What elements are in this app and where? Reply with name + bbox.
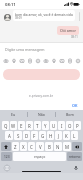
staticText: R [28,123,31,129]
button[interactable]: C [28,142,35,151]
button[interactable]: Dictate [73,165,79,171]
button[interactable]: Gif [66,57,73,64]
staticText: 123 [4,155,10,159]
staticText: S [17,133,20,139]
button[interactable]: S [14,131,22,140]
button[interactable]: Shift [1,142,11,151]
staticText: Digite uma mensagem [5,47,45,52]
staticText: K [65,133,68,139]
staticText: Não [38,112,45,117]
staticText: I [61,123,63,129]
button[interactable]: 123 [1,152,12,161]
button[interactable]: Oiii amor [57,26,79,35]
button[interactable]: G [39,131,46,140]
staticText: Bom [66,112,74,117]
button[interactable]: Eu [0,110,27,119]
staticText: T [36,123,39,129]
button[interactable]: Sticker [58,57,65,64]
button[interactable]: Hold to record voice message [3,69,80,80]
staticText: 08:09 [15,16,22,20]
staticText: F [33,133,36,139]
staticText: Y [44,123,47,129]
staticText: J [58,133,60,139]
staticText: E [20,123,23,129]
staticText: X [22,144,25,150]
button[interactable]: Gallery [18,57,25,64]
staticText: Oiii amor [60,28,76,33]
button[interactable]: Emoji [50,57,57,64]
button[interactable]: D [23,131,30,140]
staticText: H [49,133,53,139]
button[interactable]: Switch keyboard [4,165,10,171]
staticText: B [48,144,51,150]
button[interactable]: J [55,131,62,140]
staticText: espaço [34,154,46,159]
button[interactable]: More [74,57,81,64]
button[interactable]: Location [10,57,17,64]
staticText: G [41,133,45,139]
button[interactable]: retorno [67,152,82,161]
button[interactable]: Bom [56,110,83,119]
button[interactable]: Audio [42,57,49,64]
button[interactable]: P [74,121,81,130]
button[interactable]: M [63,142,71,151]
button[interactable]: H [47,131,54,140]
button[interactable]: V [36,142,44,151]
staticText: Z [14,144,17,150]
button[interactable]: W [10,121,17,130]
button[interactable]: Contact [34,57,41,64]
button[interactable]: B [45,142,53,151]
button[interactable]: R [26,121,33,130]
staticText: 08:11 [71,35,78,39]
button[interactable]: Não [28,110,55,119]
button[interactable]: I [58,121,65,130]
staticText: retorno [69,155,81,159]
button[interactable]: U [50,121,57,130]
staticText: U [52,123,56,129]
button[interactable]: L [71,131,78,140]
button[interactable]: E [18,121,25,130]
staticText: N [56,144,60,150]
staticText: C [30,144,33,150]
button[interactable]: A [5,131,13,140]
staticText: W [11,123,16,129]
button[interactable]: F [31,131,38,140]
staticText: A [8,133,11,139]
button[interactable]: K [63,131,70,140]
button[interactable]: Y [42,121,49,130]
staticText: L [73,133,76,139]
button[interactable]: N [54,142,62,151]
button[interactable]: Backspace [72,142,82,151]
button[interactable]: Q [2,121,9,130]
button[interactable]: T [34,121,41,130]
staticText: M [65,144,69,150]
button[interactable]: O [66,121,73,130]
staticText: Q [4,123,8,129]
staticText: OK [72,103,78,108]
button[interactable]: OK [71,102,79,109]
button[interactable]: bom dia amor, ok, você é demais vida [13,10,75,21]
staticText: bom dia amor, ok, você é demais vida [15,12,73,16]
staticText: D [25,133,29,139]
button[interactable]: espaço [13,152,66,161]
staticText: 08:11 [5,2,16,8]
staticText: Eu [11,112,16,117]
button[interactable]: Z [12,142,19,151]
staticText: O [68,123,72,129]
staticText: V [39,144,42,150]
button[interactable]: Document [26,57,33,64]
staticText: P [76,123,79,129]
button[interactable]: Camera [2,57,9,64]
staticText: e-privacy.com.br [29,94,54,98]
button[interactable]: X [20,142,27,151]
